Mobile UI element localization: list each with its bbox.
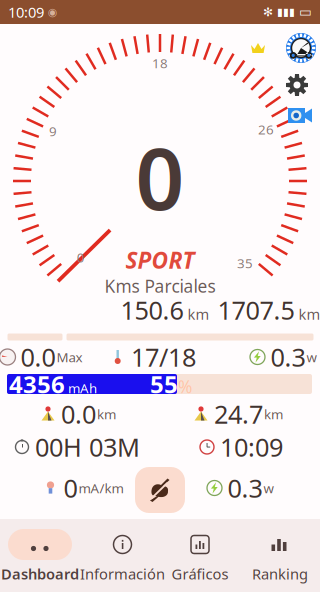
button[interactable]: Información [80, 529, 160, 583]
staticText: 9 [49, 122, 57, 140]
staticText: ▭ [299, 4, 312, 19]
staticText: 24.7 [214, 397, 263, 431]
staticText: Max [56, 348, 82, 366]
staticText: Kms Parciales [104, 274, 215, 297]
staticText: Ranking [252, 564, 308, 583]
staticText: ▮▮▮ [277, 6, 295, 18]
button[interactable]: Settings [285, 73, 309, 97]
staticText: 0 [135, 120, 184, 234]
staticText: Dashboard [1, 564, 79, 583]
staticText: 150.6 [120, 293, 183, 327]
staticText: ◉ [48, 6, 57, 18]
staticText: km [298, 304, 320, 324]
button[interactable]: Gráficos [160, 529, 240, 583]
staticText: km [187, 304, 209, 324]
staticText: km [264, 405, 283, 423]
staticText: mAh [68, 379, 97, 397]
staticText: % [178, 375, 192, 398]
staticText: 4356 [9, 368, 65, 400]
staticText: 00H 03M [35, 430, 140, 464]
staticText: 0 [63, 471, 77, 505]
staticText: w [263, 479, 273, 497]
staticText: 0.0 [20, 340, 55, 374]
staticText: 1707.5 [217, 293, 294, 327]
staticText: 55 [150, 368, 178, 400]
staticText: 0 [77, 249, 85, 266]
staticText: ✻ [263, 5, 273, 19]
staticText: 10:09 [220, 430, 283, 464]
button[interactable]: Connect [135, 467, 185, 513]
staticText: 0.3 [227, 471, 262, 505]
button[interactable]: Record [288, 104, 312, 128]
staticText: mA/km [78, 479, 123, 497]
button[interactable]: App [286, 33, 316, 63]
staticText: 35 [237, 254, 253, 272]
staticText: 0.3 [270, 340, 305, 374]
staticText: 18 [152, 54, 168, 72]
staticText: 0.0 [61, 397, 96, 431]
staticText: 10:09 [8, 2, 44, 22]
staticText: 26 [258, 120, 274, 138]
staticText: Información [80, 564, 165, 583]
button[interactable]: Dashboard [0, 529, 80, 583]
staticText: km [97, 405, 116, 423]
staticText: SPORT [125, 245, 194, 275]
staticText: 17/18 [131, 340, 196, 374]
staticText: Gráficos [171, 564, 228, 583]
staticText: w [306, 348, 316, 366]
button[interactable]: Ranking [240, 529, 320, 583]
